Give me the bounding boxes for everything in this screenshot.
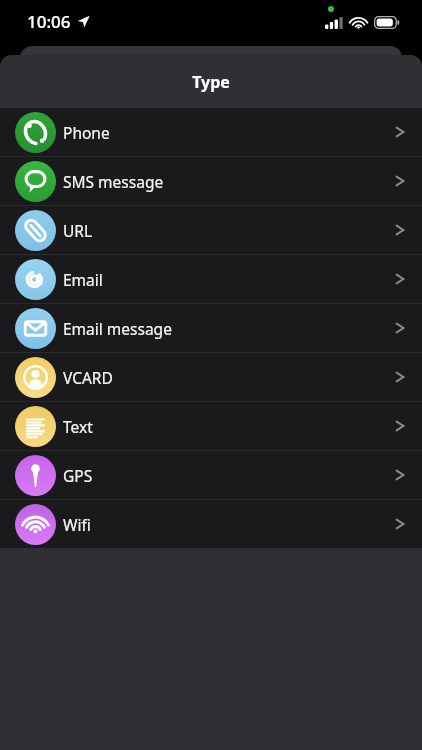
staticText: URL — [63, 220, 93, 241]
button[interactable]: URL — [0, 206, 422, 254]
button[interactable]: VCARD — [0, 353, 422, 401]
staticText: Email — [63, 269, 103, 290]
staticText: Phone — [63, 122, 110, 143]
button[interactable]: Text — [0, 402, 422, 450]
staticText: GPS — [63, 465, 93, 486]
staticText: VCARD — [63, 367, 113, 388]
staticText: Wifi — [63, 514, 91, 535]
button[interactable]: Wifi — [0, 500, 422, 548]
staticText: Type — [192, 71, 230, 93]
button[interactable]: GPS — [0, 451, 422, 499]
staticText: Email message — [63, 318, 172, 339]
button[interactable]: Phone — [0, 108, 422, 156]
button[interactable]: Email — [0, 255, 422, 303]
staticText: 10:06 — [27, 10, 71, 33]
staticText: Text — [63, 416, 93, 437]
staticText: SMS message — [63, 171, 164, 192]
button[interactable]: SMS message — [0, 157, 422, 205]
button[interactable]: Email message — [0, 304, 422, 352]
